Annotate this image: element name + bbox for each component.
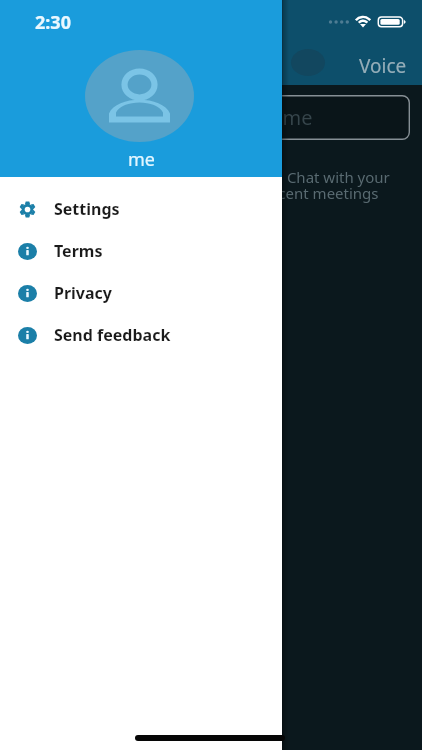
staticText: Start a Chat with your [237,167,390,187]
button[interactable]: Send feedback [0,314,282,356]
staticText: Send feedback [54,324,171,346]
button[interactable]: Voice [359,53,407,79]
staticText: Terms [54,240,103,262]
button[interactable]: Privacy [0,272,282,314]
staticText: 2:30 [35,10,71,35]
staticText: Enter meeting name [120,104,313,131]
button[interactable]: Settings [0,188,282,230]
button[interactable]: Terms [0,230,282,272]
staticText: Privacy [54,282,112,304]
staticText: Settings [54,198,120,220]
staticText: me [128,147,155,172]
button[interactable]: Enter meeting name [240,95,410,140]
staticText: recent meetings [264,183,379,203]
button[interactable]: Meetings tab [291,49,325,76]
